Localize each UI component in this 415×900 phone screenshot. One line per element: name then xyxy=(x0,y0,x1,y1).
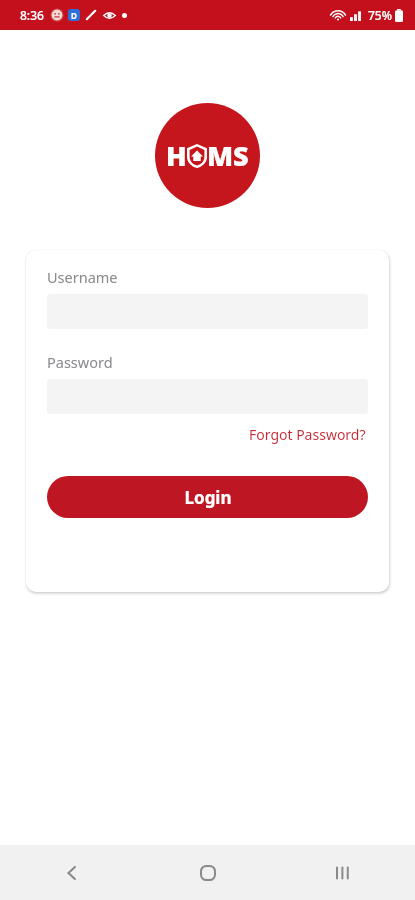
staticText: Username xyxy=(47,267,118,287)
button[interactable]: Back xyxy=(48,849,96,897)
staticText: D xyxy=(71,10,77,21)
staticText: Login xyxy=(184,486,232,509)
button[interactable]: Recent apps xyxy=(319,849,367,897)
staticText: 75% xyxy=(368,7,392,23)
button[interactable]: Login xyxy=(47,476,368,518)
staticText: H xyxy=(166,137,187,174)
staticText: MS xyxy=(207,137,249,174)
button[interactable]: Forgot Password? xyxy=(247,423,368,446)
button[interactable]: Home xyxy=(184,849,232,897)
staticText: Forgot Password? xyxy=(249,425,366,444)
staticText: Password xyxy=(47,352,113,372)
staticText: 8:36 xyxy=(20,7,44,23)
